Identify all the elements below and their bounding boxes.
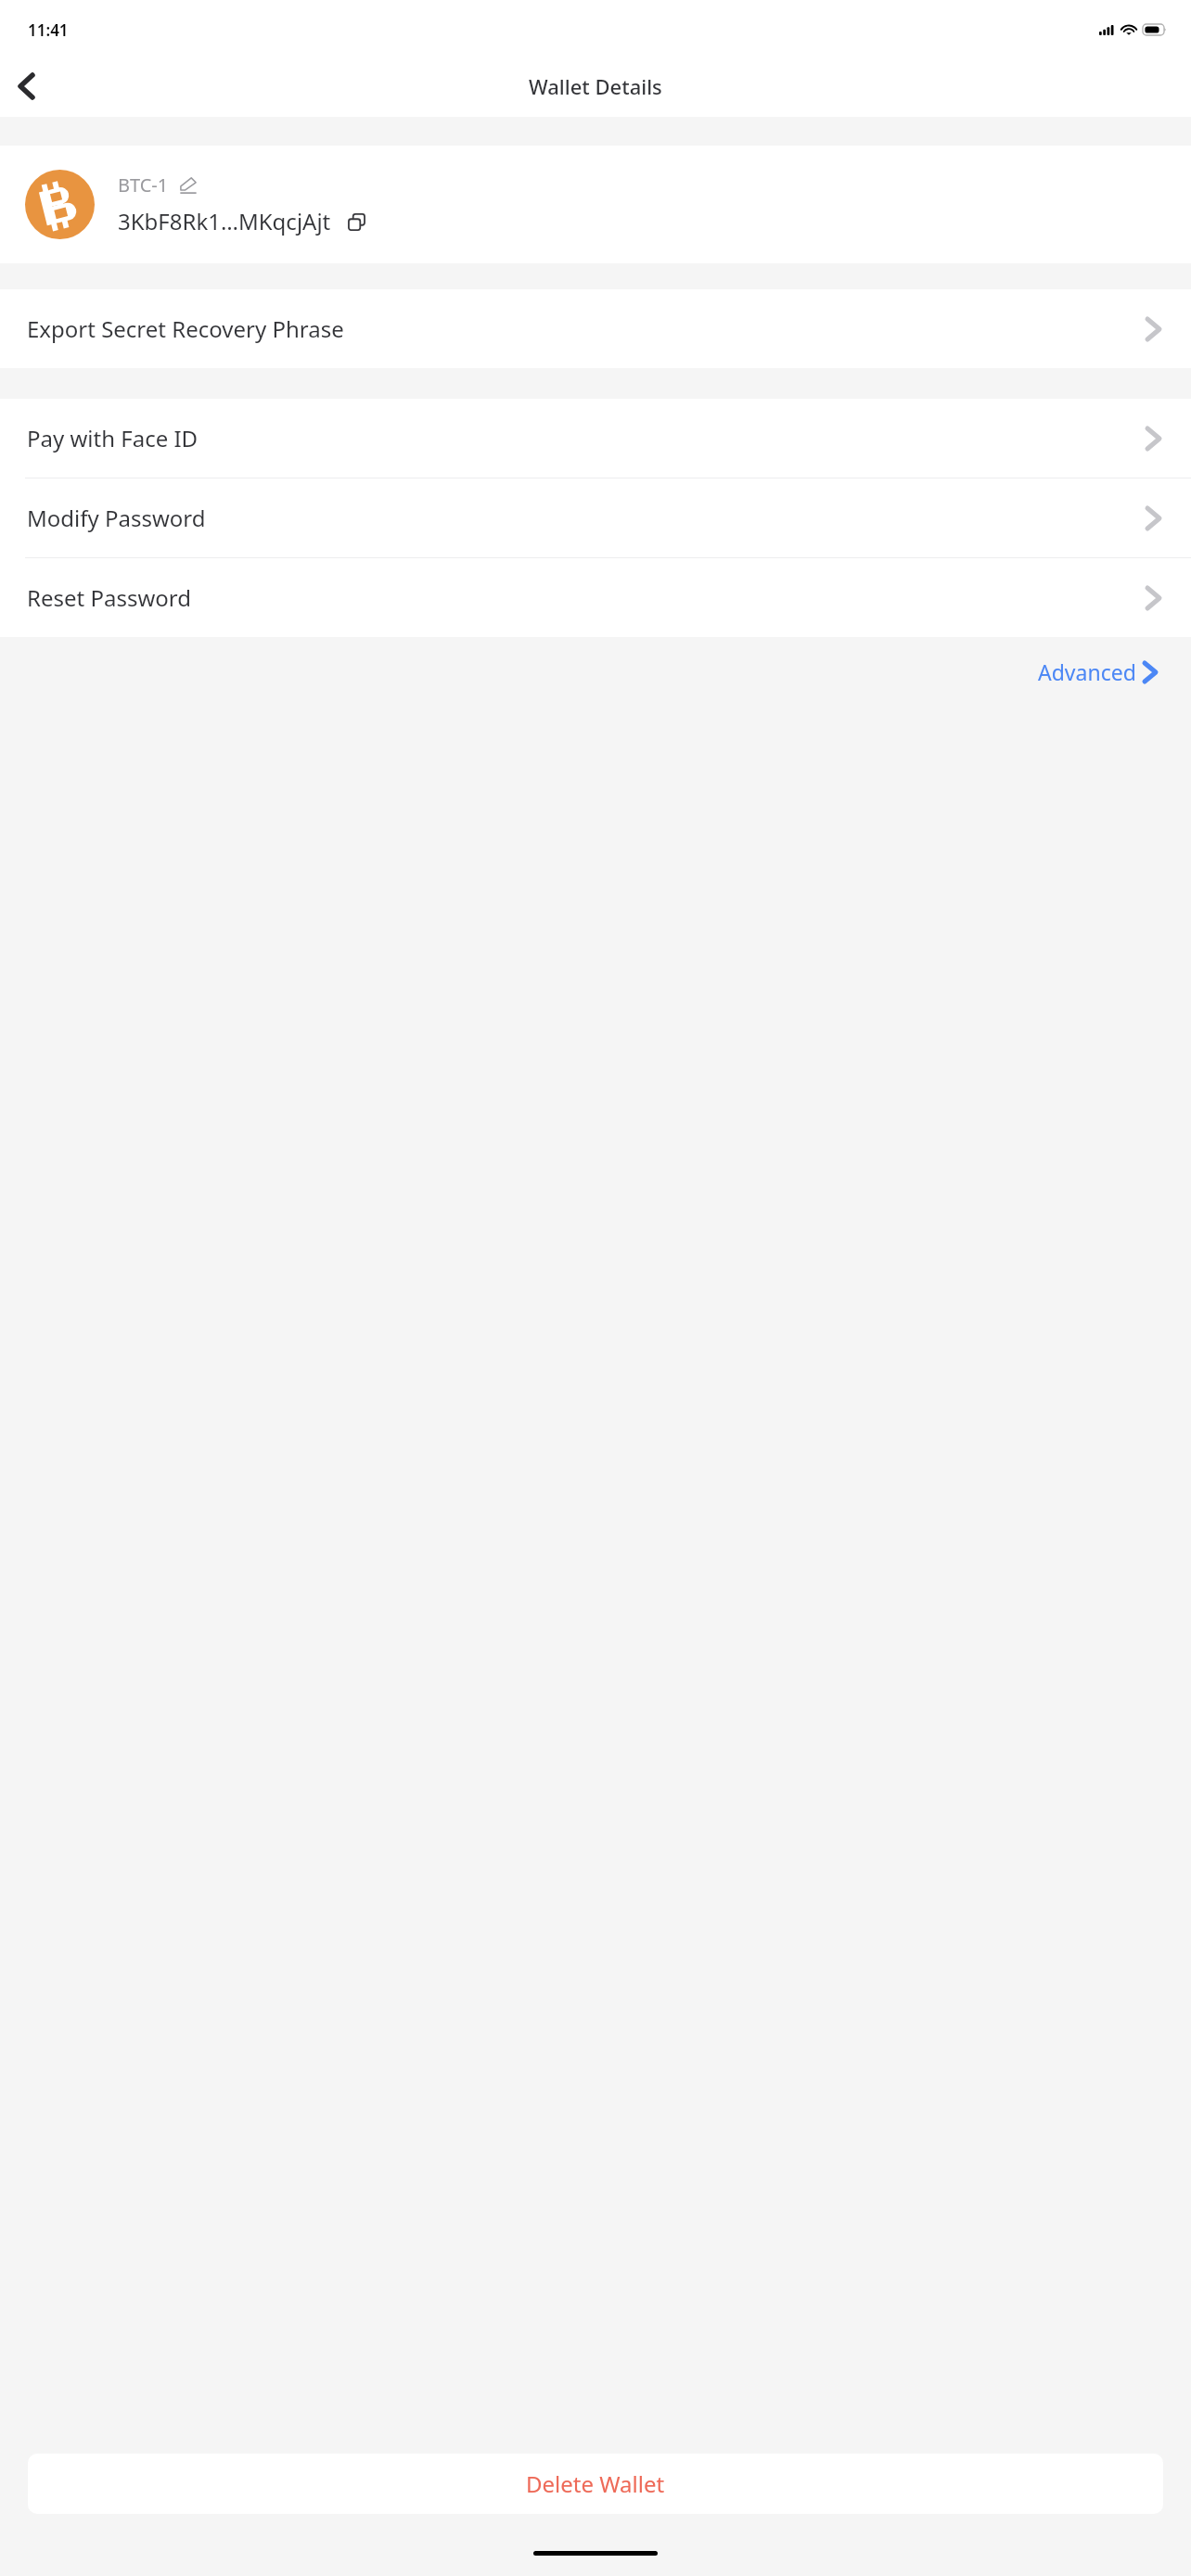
staticText: Delete Wallet [526, 2468, 665, 2499]
button[interactable]: Reset Password [0, 558, 1191, 637]
button[interactable]: Modify Password [0, 478, 1191, 557]
button[interactable]: Export Secret Recovery Phrase [0, 289, 1191, 368]
staticText: 3KbF8Rk1…MKqcjAjt [118, 206, 331, 236]
button[interactable]: Pay with Face ID [0, 399, 1191, 478]
staticText: Pay with Face ID [27, 423, 1147, 453]
button[interactable]: Copy address [344, 210, 368, 234]
staticText: Reset Password [27, 582, 1147, 613]
button[interactable]: BTC-1 [0, 146, 1191, 263]
staticText: BTC-1 [118, 172, 169, 198]
button[interactable]: Advanced [1032, 650, 1161, 694]
staticText: Export Secret Recovery Phrase [27, 313, 1147, 344]
staticText: 11:41 [28, 19, 69, 41]
button[interactable]: Delete Wallet [28, 2454, 1163, 2514]
staticText: Advanced [1038, 657, 1136, 686]
staticText: Modify Password [27, 503, 1147, 533]
button[interactable]: Rename wallet [178, 175, 198, 196]
button[interactable]: Back [0, 60, 52, 112]
staticText: Wallet Details [529, 72, 662, 100]
